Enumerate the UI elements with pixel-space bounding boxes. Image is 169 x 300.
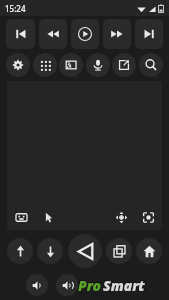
button[interactable]: Volume up [56, 274, 78, 296]
button[interactable]: Open [112, 53, 136, 77]
button[interactable]: Play [71, 19, 99, 49]
button[interactable]: Recents [106, 238, 132, 264]
button[interactable]: Search [139, 53, 163, 77]
button[interactable]: Rewind [39, 19, 67, 49]
button[interactable]: Skip next [135, 19, 163, 49]
staticText: Smart [102, 275, 147, 295]
button[interactable]: Apps [33, 53, 57, 77]
button[interactable]: Home [136, 238, 162, 264]
button[interactable]: Cast [59, 53, 83, 77]
staticText: Pro [78, 276, 102, 295]
button[interactable]: Scroll up [7, 238, 33, 264]
button[interactable]: Touchpad [7, 81, 162, 230]
button[interactable]: Volume down [26, 274, 48, 296]
staticText: Smart [103, 276, 145, 295]
button[interactable]: Move [113, 209, 129, 225]
button[interactable]: Voice [86, 53, 110, 77]
button[interactable]: Settings [6, 53, 30, 77]
button[interactable]: Keyboard [13, 209, 29, 225]
button[interactable]: Pointer [40, 209, 56, 225]
button[interactable]: Skip previous [6, 19, 35, 49]
button[interactable]: Fast forward [103, 19, 131, 49]
button[interactable]: Focus [140, 209, 156, 225]
staticText: Pro [77, 275, 102, 295]
staticText: 15:24 [5, 3, 26, 14]
button[interactable]: Back [68, 234, 102, 268]
button[interactable]: Scroll down [37, 238, 63, 264]
